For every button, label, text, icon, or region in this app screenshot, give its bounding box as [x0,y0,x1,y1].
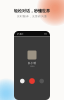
staticText: 正在呼叫... [30,65,34,67]
staticText: 实时翻译，无障碍沟通 [17,15,47,18]
staticText: 张小明 [27,61,36,65]
staticText: 9:41 [17,32,24,35]
staticText: 轻松对话，秒懂世界 [14,8,50,13]
